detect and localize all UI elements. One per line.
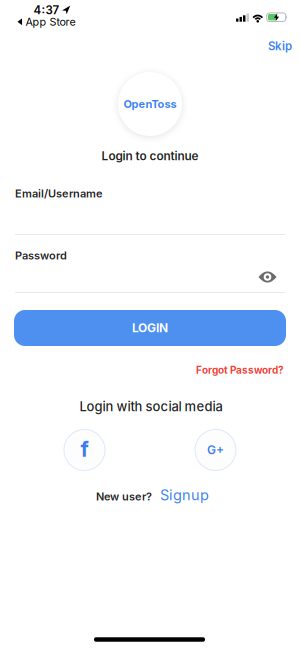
staticText: App Store <box>25 15 75 28</box>
staticText: LOGIN <box>132 321 168 335</box>
staticText: Login with social media <box>79 399 222 414</box>
button[interactable]: Signup <box>160 486 209 504</box>
staticText: OpenToss <box>123 97 176 111</box>
button[interactable]: Skip <box>268 39 292 53</box>
staticText: Forgot Password? <box>196 364 284 376</box>
staticText: 4:37 <box>33 3 59 17</box>
staticText: New user? <box>96 490 152 503</box>
staticText: Password <box>15 249 67 262</box>
button[interactable]: Login with Facebook <box>64 429 105 470</box>
staticText: Login to continue <box>101 149 198 163</box>
button[interactable]: Show password <box>258 271 276 283</box>
staticText: Email/Username <box>15 187 103 200</box>
staticText: G+ <box>207 443 224 457</box>
staticText: Signup <box>160 486 209 504</box>
button[interactable]: Login with Google <box>195 429 236 470</box>
staticText: f <box>80 436 88 462</box>
staticText: Skip <box>268 39 292 53</box>
button[interactable]: Forgot Password? <box>196 364 284 376</box>
button[interactable]: LOGIN <box>14 310 286 346</box>
